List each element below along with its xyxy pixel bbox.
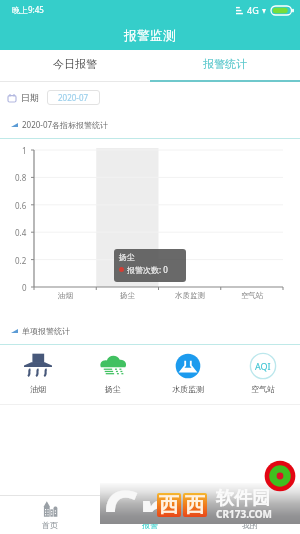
staticText: 报警监测	[124, 27, 176, 43]
staticText: 0.8	[15, 172, 27, 183]
button[interactable]: 扬尘	[75, 352, 150, 394]
staticText: 水质监测	[175, 291, 205, 300]
staticText: 0.6	[15, 200, 27, 211]
staticText: 单项报警统计	[22, 326, 70, 336]
staticText: 西	[159, 493, 179, 517]
staticText: 4G	[247, 4, 259, 16]
staticText: Cr	[103, 471, 164, 512]
staticText: 日期	[21, 92, 39, 103]
staticText: 0.4	[15, 227, 27, 238]
button[interactable]: AQI	[225, 352, 300, 394]
staticText: 水质监测	[172, 384, 204, 394]
button[interactable]: 油烟	[0, 352, 75, 394]
staticText: 2020-07	[58, 92, 89, 103]
staticText: 1	[22, 145, 27, 156]
button[interactable]: 日期	[8, 89, 100, 106]
staticText: 扬尘	[105, 384, 121, 394]
staticText: 软件园	[216, 487, 270, 510]
staticText: CR173.COM	[216, 507, 273, 521]
staticText: 扬尘	[119, 252, 135, 262]
staticText: 空气站	[241, 291, 264, 300]
staticText: 西	[185, 493, 205, 517]
staticText: 空气站	[251, 384, 275, 394]
staticText: 油烟	[30, 384, 46, 394]
staticText: 扬尘	[120, 291, 135, 300]
button[interactable]: 今日报警	[0, 50, 150, 82]
staticText: 我的	[242, 520, 258, 530]
staticText: 报警次数: 0	[127, 264, 168, 275]
staticText: 2020-07各指标报警统计	[22, 119, 109, 130]
staticText: 0	[22, 282, 27, 293]
button[interactable]: 我的	[200, 496, 300, 530]
button[interactable]: 水质监测	[150, 352, 225, 394]
staticText: 报警	[142, 520, 158, 530]
staticText: 报警统计	[203, 57, 247, 71]
button[interactable]: 首页	[0, 496, 100, 530]
staticText: 今日报警	[53, 57, 97, 71]
button[interactable]: 报警	[100, 496, 200, 530]
button[interactable]: 报警统计	[150, 50, 300, 82]
staticText: 晚上9:45	[12, 4, 44, 15]
staticText: 油烟	[58, 291, 73, 300]
staticText: AQI	[255, 360, 271, 372]
staticText: 0.2	[15, 255, 27, 266]
staticText: 首页	[42, 520, 58, 530]
